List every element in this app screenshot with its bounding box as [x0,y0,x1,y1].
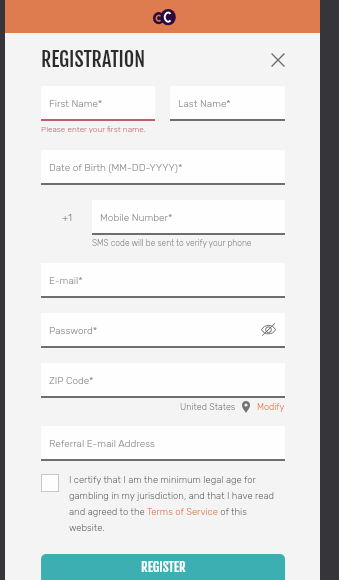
button[interactable]: Modify [257,402,285,413]
staticText: Date of Birth (MM-DD-YYYY)* [49,162,183,174]
staticText: Please enter your first name. [41,124,146,134]
staticText: Modify [257,402,285,413]
staticText: REGISTRATION [41,47,146,72]
button[interactable]: First Name* [41,86,155,121]
staticText: I certify that I am the minimum legal ag… [69,474,277,533]
button[interactable]: Referral E-mail Address [41,426,285,461]
button[interactable]: REGISTER [41,554,285,580]
button[interactable]: Mobile Number* [92,200,285,235]
staticText: ZIP Code* [49,375,94,387]
staticText: +1 [62,212,72,224]
button[interactable]: Last Name* [170,86,285,121]
staticText: First Name* [49,98,103,110]
button[interactable]: Close [267,49,289,71]
staticText: Password* [49,325,98,337]
staticText: REGISTER [141,559,186,575]
button[interactable]: Show password [259,320,277,338]
button[interactable]: Date of Birth (MM-DD-YYYY)* [41,150,285,185]
button[interactable]: Password* [41,313,285,348]
staticText: Referral E-mail Address [49,438,155,450]
staticText: E-mail* [49,275,83,287]
staticText: SMS code will be sent to verify your pho… [92,238,252,248]
button[interactable]: ZIP Code* [41,363,285,398]
staticText: Mobile Number* [100,212,173,224]
button[interactable]: Logo [149,4,177,30]
staticText: United States [180,402,236,413]
button[interactable]: E-mail* [41,263,285,298]
staticText: Last Name* [178,98,231,110]
button[interactable]: I certify checkbox [41,474,59,492]
